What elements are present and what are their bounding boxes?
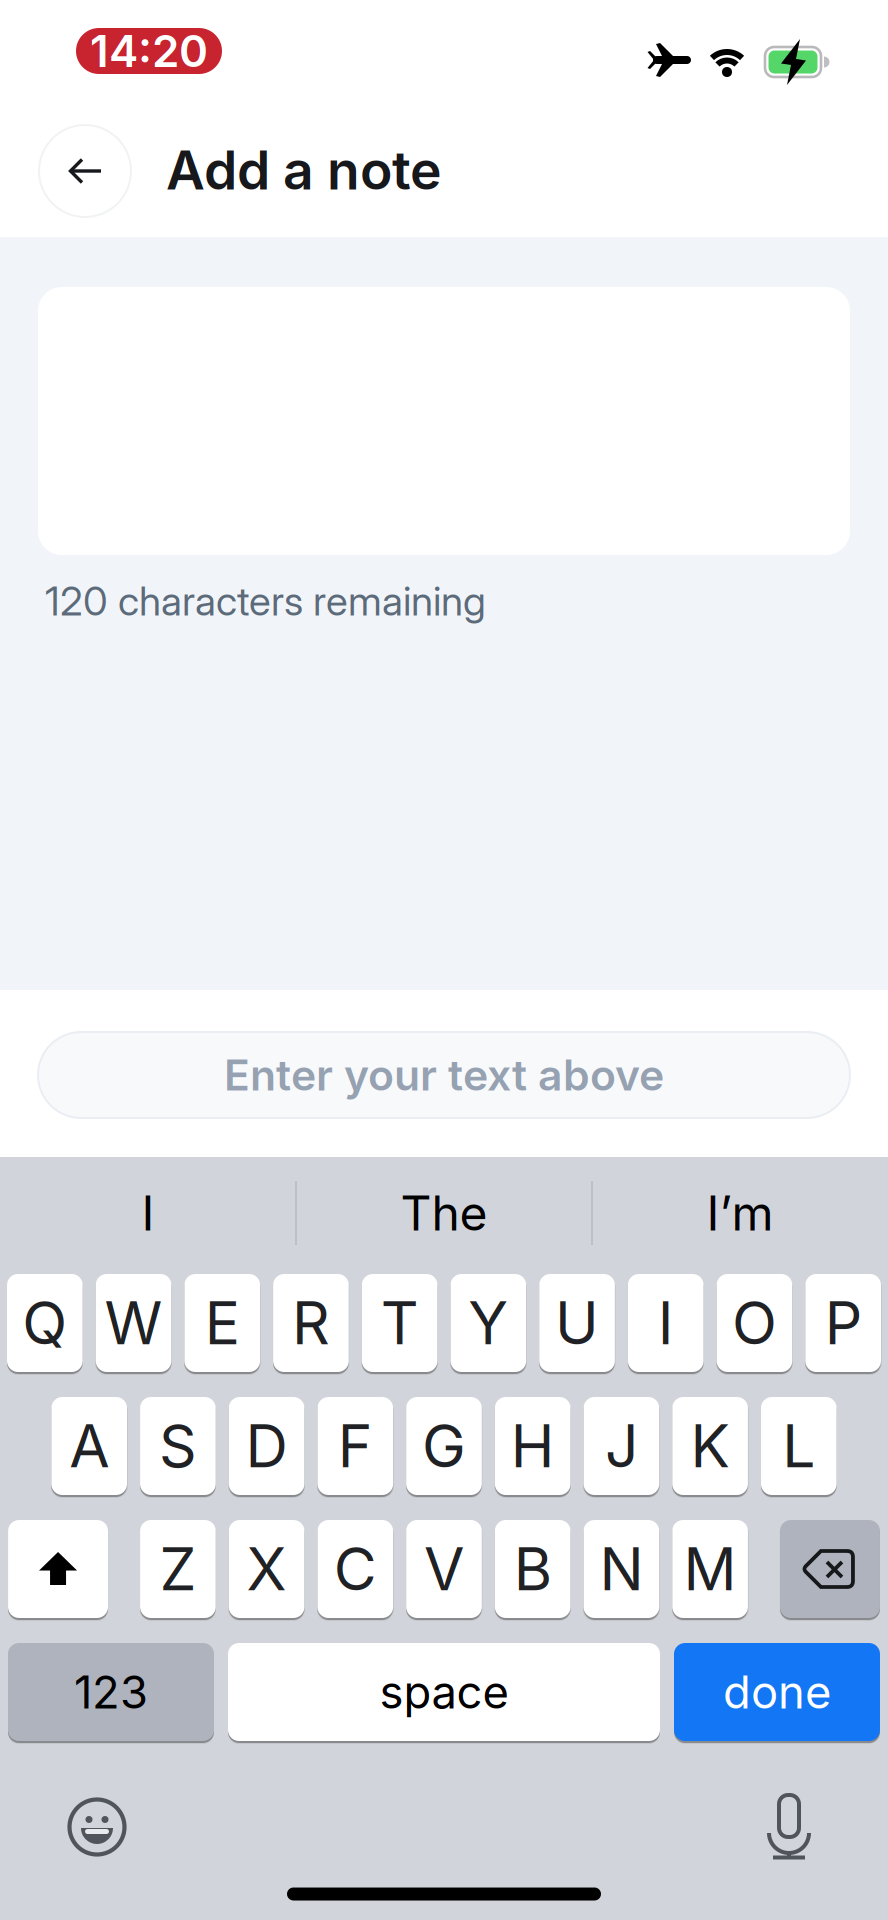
staticText: space: [379, 1665, 508, 1719]
button[interactable]: A: [51, 1397, 127, 1495]
staticText: Y: [468, 1288, 508, 1358]
button[interactable]: B: [495, 1520, 571, 1618]
button[interactable]: Emoji: [57, 1787, 137, 1867]
button[interactable]: done: [674, 1643, 880, 1741]
button[interactable]: I: [628, 1274, 704, 1372]
button[interactable]: R: [273, 1274, 349, 1372]
button[interactable]: O: [717, 1274, 792, 1372]
staticText: done: [723, 1665, 831, 1719]
button[interactable]: N: [583, 1520, 659, 1618]
button[interactable]: The: [299, 1161, 589, 1265]
staticText: A: [69, 1411, 109, 1481]
staticText: C: [334, 1534, 377, 1604]
button[interactable]: Y: [450, 1274, 526, 1372]
staticText: O: [732, 1288, 777, 1358]
staticText: T: [381, 1288, 419, 1358]
staticText: J: [605, 1411, 638, 1481]
button[interactable]: I: [3, 1161, 293, 1265]
button[interactable]: F: [317, 1397, 393, 1495]
staticText: 14:20: [90, 25, 208, 77]
button[interactable]: M: [672, 1520, 748, 1618]
button[interactable]: V: [406, 1520, 482, 1618]
button[interactable]: U: [539, 1274, 615, 1372]
button[interactable]: Back: [39, 125, 131, 217]
staticText: Z: [159, 1534, 196, 1604]
staticText: D: [246, 1411, 288, 1481]
button[interactable]: W: [96, 1274, 171, 1372]
button[interactable]: K: [672, 1397, 748, 1495]
button[interactable]: Delete: [780, 1520, 880, 1618]
staticText: P: [825, 1288, 862, 1358]
button[interactable]: Z: [140, 1520, 216, 1618]
button[interactable]: C: [317, 1520, 393, 1618]
staticText: H: [511, 1411, 555, 1481]
button[interactable]: E: [184, 1274, 260, 1372]
staticText: B: [514, 1534, 552, 1604]
staticText: U: [555, 1288, 599, 1358]
button[interactable]: H: [495, 1397, 570, 1495]
button[interactable]: J: [583, 1397, 659, 1495]
staticText: S: [159, 1411, 197, 1481]
button[interactable]: P: [805, 1274, 881, 1372]
staticText: Enter your text above: [224, 1050, 664, 1100]
button[interactable]: L: [761, 1397, 837, 1495]
staticText: X: [247, 1534, 287, 1604]
staticText: I: [658, 1288, 674, 1358]
button[interactable]: Enter your text above: [38, 1032, 850, 1118]
button[interactable]: G: [406, 1397, 482, 1495]
staticText: M: [684, 1534, 737, 1604]
button[interactable]: S: [140, 1397, 216, 1495]
button[interactable]: D: [229, 1397, 304, 1495]
staticText: R: [292, 1288, 330, 1358]
staticText: 123: [74, 1665, 148, 1719]
button[interactable]: Q: [7, 1274, 83, 1372]
staticText: I’m: [706, 1185, 773, 1241]
button[interactable]: 123: [8, 1643, 214, 1741]
button[interactable]: Dictation: [749, 1786, 829, 1866]
staticText: F: [338, 1411, 373, 1481]
staticText: The: [400, 1185, 487, 1241]
button[interactable]: Shift: [8, 1520, 108, 1618]
button[interactable]: space: [228, 1643, 660, 1741]
staticText: I: [141, 1185, 154, 1241]
staticText: Add a note: [166, 138, 442, 201]
staticText: E: [205, 1288, 240, 1358]
button[interactable]: I’m: [595, 1161, 885, 1265]
staticText: G: [422, 1411, 466, 1481]
staticText: W: [104, 1288, 162, 1358]
staticText: 120 characters remaining: [45, 577, 486, 625]
staticText: V: [424, 1534, 464, 1604]
staticText: N: [599, 1534, 643, 1604]
staticText: K: [691, 1411, 730, 1481]
button[interactable]: T: [362, 1274, 437, 1372]
staticText: L: [782, 1411, 815, 1481]
button[interactable]: X: [229, 1520, 304, 1618]
staticText: Q: [22, 1288, 67, 1358]
